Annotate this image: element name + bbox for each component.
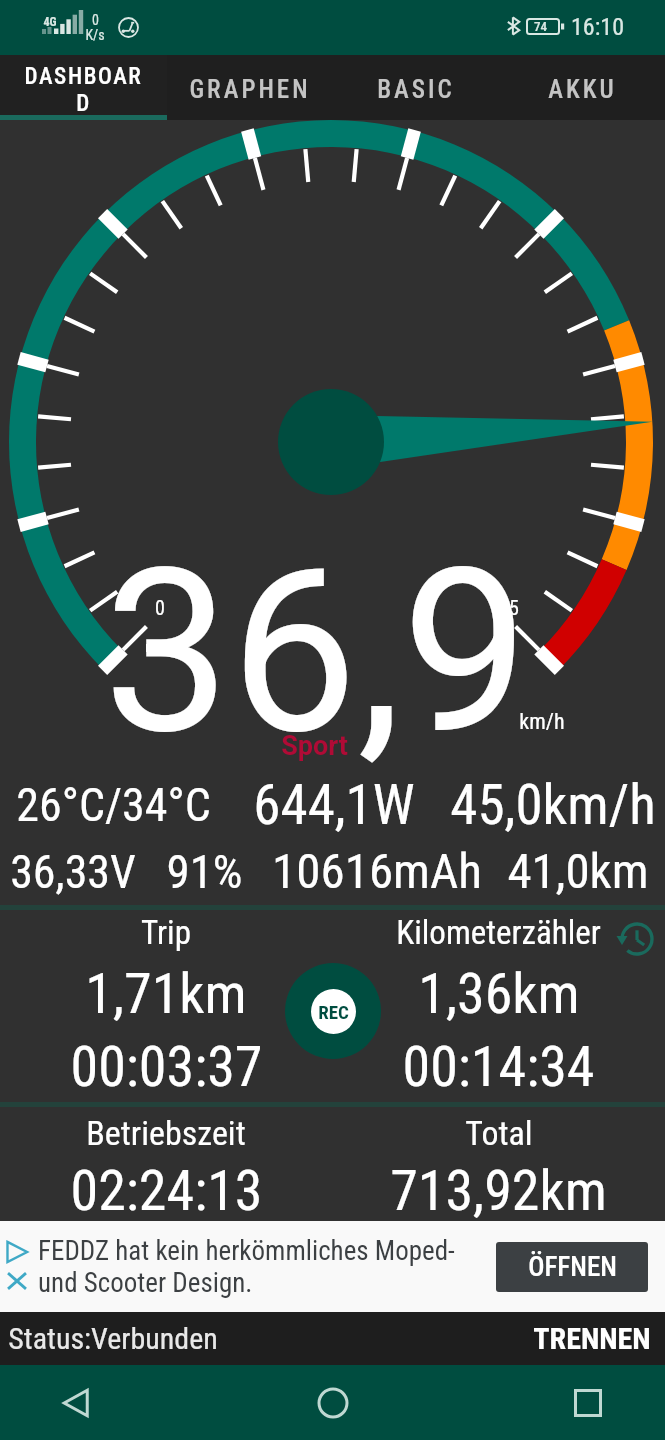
staticText: 713,92km bbox=[390, 1158, 607, 1221]
staticText: 26°C/34°C bbox=[16, 778, 211, 832]
button[interactable]: Home bbox=[296, 1366, 370, 1440]
staticText: Trip bbox=[141, 913, 191, 952]
staticText: 45 bbox=[499, 596, 519, 619]
staticText: 36,33V bbox=[10, 845, 136, 899]
staticText: 1,36km bbox=[418, 961, 580, 1027]
staticText: K/s bbox=[85, 27, 105, 43]
staticText: Sport bbox=[281, 730, 348, 762]
staticText: DASHBOARD bbox=[20, 63, 147, 116]
staticText: 74 bbox=[534, 19, 547, 34]
staticText: GRAPHEN bbox=[189, 75, 311, 104]
staticText: FEDDZ hat kein herkömmliches Moped- bbox=[38, 1235, 455, 1267]
staticText: 644,1W bbox=[253, 773, 415, 837]
staticText: Total bbox=[465, 1113, 533, 1153]
button[interactable]: TRENNEN bbox=[533, 1321, 651, 1356]
staticText: 36,9 bbox=[103, 520, 529, 785]
staticText: 4G bbox=[43, 15, 57, 29]
staticText: 1,71km bbox=[85, 961, 247, 1027]
staticText: und Scooter Design. bbox=[38, 1267, 253, 1299]
staticText: 91% bbox=[166, 844, 243, 899]
button[interactable]: Back bbox=[40, 1366, 114, 1440]
staticText: 10616mAh bbox=[272, 843, 482, 900]
staticText: Status:Verbunden bbox=[8, 1321, 218, 1356]
staticText: 0 bbox=[92, 12, 99, 28]
button[interactable]: ÖFFNEN bbox=[496, 1242, 648, 1292]
staticText: ÖFFNEN bbox=[528, 1251, 617, 1283]
button[interactable]: BASIC bbox=[333, 55, 499, 120]
staticText: BASIC bbox=[377, 75, 455, 104]
button[interactable]: DASHBOARD bbox=[0, 55, 167, 120]
staticText: 00:03:37 bbox=[70, 1034, 263, 1100]
button[interactable]: Recents bbox=[551, 1366, 625, 1440]
button[interactable]: GRAPHEN bbox=[167, 55, 333, 120]
button[interactable]: REC bbox=[285, 963, 381, 1059]
staticText: AKKU bbox=[548, 75, 617, 104]
staticText: 02:24:13 bbox=[70, 1158, 263, 1221]
staticText: 16:10 bbox=[571, 13, 624, 41]
staticText: Kilometerzähler bbox=[396, 913, 601, 952]
staticText: Betriebszeit bbox=[86, 1113, 246, 1153]
staticText: 00:14:34 bbox=[402, 1034, 595, 1100]
staticText: km/h bbox=[519, 709, 565, 735]
staticText: TRENNEN bbox=[533, 1321, 651, 1356]
staticText: REC bbox=[318, 1001, 349, 1023]
button[interactable]: History bbox=[616, 918, 658, 960]
button[interactable]: AKKU bbox=[499, 55, 665, 120]
staticText: 41,0km bbox=[507, 843, 649, 900]
staticText: 0 bbox=[155, 596, 165, 619]
staticText: 45,0km/h bbox=[450, 773, 656, 837]
